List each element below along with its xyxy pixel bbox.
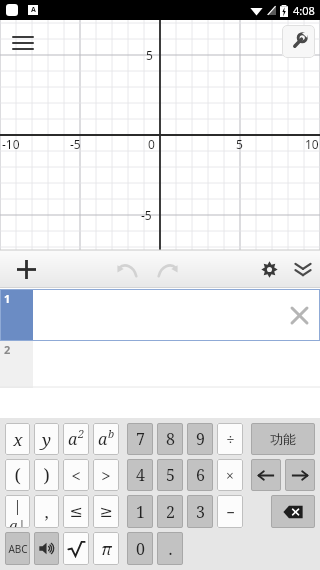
staticText: 5 xyxy=(146,47,153,63)
staticText: < xyxy=(71,464,81,487)
button[interactable]: 4 xyxy=(127,459,153,491)
button[interactable]: Undo xyxy=(108,250,146,288)
button[interactable]: π xyxy=(93,532,119,565)
button[interactable]: 1 xyxy=(0,289,320,341)
staticText: 8 xyxy=(166,428,175,450)
staticText: . xyxy=(168,538,173,560)
button[interactable]: Sound xyxy=(34,532,59,565)
button[interactable]: . xyxy=(157,532,183,565)
staticText: x xyxy=(13,428,23,451)
staticText: y xyxy=(42,428,51,451)
staticText: 2 xyxy=(166,501,175,523)
button[interactable]: Menu xyxy=(6,26,40,60)
button[interactable]: ÷ xyxy=(217,423,243,455)
button[interactable]: ABC xyxy=(5,532,30,565)
button[interactable]: 9 xyxy=(187,423,213,455)
staticText: > xyxy=(101,464,111,487)
button[interactable]: < xyxy=(63,459,89,491)
button[interactable]: 6 xyxy=(187,459,213,491)
staticText: -10 xyxy=(2,136,20,152)
staticText: 功能 xyxy=(270,431,296,447)
button[interactable]: 2 xyxy=(157,495,183,528)
staticText: -5 xyxy=(141,207,152,223)
staticText: |a| xyxy=(5,495,30,528)
staticText: 0 xyxy=(148,136,155,152)
button[interactable]: a xyxy=(93,423,119,455)
button[interactable]: Backspace xyxy=(271,495,315,528)
button[interactable]: Delete expression xyxy=(284,300,314,330)
button[interactable]: ≥ xyxy=(93,495,119,528)
staticText: 5 xyxy=(236,136,243,152)
staticText: ABC xyxy=(8,542,28,556)
staticText: × xyxy=(226,466,234,485)
staticText: 1 xyxy=(4,291,11,306)
button[interactable]: Square root xyxy=(63,532,89,565)
button[interactable]: y xyxy=(34,423,59,455)
button[interactable]: 1 xyxy=(127,495,153,528)
button[interactable]: Redo xyxy=(148,250,186,288)
staticText: ) xyxy=(43,463,50,488)
staticText: 0 xyxy=(136,538,145,560)
button[interactable]: 3 xyxy=(187,495,213,528)
staticText: 9 xyxy=(196,428,205,450)
button[interactable]: > xyxy=(93,459,119,491)
staticText: a xyxy=(68,428,78,450)
button[interactable]: Move left xyxy=(251,459,281,491)
staticText: π xyxy=(101,538,112,560)
staticText: -5 xyxy=(70,136,81,152)
button[interactable]: ≤ xyxy=(63,495,89,528)
staticText: ÷ xyxy=(226,429,235,449)
button[interactable]: Settings xyxy=(252,250,286,288)
staticText: b xyxy=(108,426,115,441)
staticText: ≤ xyxy=(69,502,83,521)
staticText: 5 xyxy=(166,464,175,486)
button[interactable]: 5 xyxy=(157,459,183,491)
button[interactable]: Hide keypad xyxy=(286,250,320,288)
button[interactable]: Move right xyxy=(285,459,315,491)
button[interactable]: a xyxy=(63,423,89,455)
button[interactable]: , xyxy=(34,495,59,528)
staticText: a xyxy=(98,428,108,450)
button[interactable]: 2 xyxy=(0,340,320,388)
button[interactable]: 0 xyxy=(127,532,153,565)
button[interactable]: x xyxy=(5,423,30,455)
staticText: 4:08 xyxy=(293,3,315,18)
staticText: 1 xyxy=(136,501,145,523)
button[interactable]: 8 xyxy=(157,423,183,455)
button[interactable]: 功能 xyxy=(251,423,315,455)
staticText: 2 xyxy=(4,342,11,357)
staticText: 2 xyxy=(78,426,85,441)
staticText: 4 xyxy=(136,464,145,486)
button[interactable]: Graph settings xyxy=(282,25,315,58)
staticText: , xyxy=(44,500,49,523)
staticText: − xyxy=(226,502,235,522)
staticText: 10 xyxy=(305,136,319,152)
button[interactable]: − xyxy=(217,495,243,528)
button[interactable]: |a| xyxy=(5,495,30,528)
staticText: 7 xyxy=(136,428,145,450)
staticText: 3 xyxy=(196,501,205,523)
staticText: ( xyxy=(14,463,21,488)
button[interactable]: 7 xyxy=(127,423,153,455)
button[interactable]: ) xyxy=(34,459,59,491)
button[interactable]: Add expression xyxy=(6,250,46,288)
staticText: A xyxy=(31,5,36,15)
button[interactable]: ( xyxy=(5,459,30,491)
staticText: ≥ xyxy=(99,502,113,521)
staticText: 6 xyxy=(196,464,205,486)
button[interactable]: × xyxy=(217,459,243,491)
